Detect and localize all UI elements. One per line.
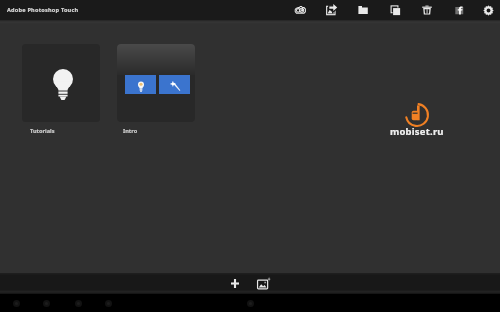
button[interactable]: Delete: [413, 0, 441, 20]
button[interactable]: Settings: [474, 0, 500, 20]
button[interactable]: Intro: [117, 44, 195, 135]
staticText: Adobe Photoshop Touch: [7, 6, 79, 14]
button[interactable]: Folder: [349, 0, 377, 20]
staticText: Tutorials: [30, 127, 55, 135]
button[interactable]: Tutorials: [22, 44, 100, 135]
button[interactable]: Export image: [317, 0, 345, 20]
button[interactable]: New image: [250, 273, 278, 294]
button[interactable]: Recent apps: [71, 297, 85, 310]
button[interactable]: Home: [39, 297, 53, 310]
staticText: mobiset.ru: [390, 125, 444, 138]
button[interactable]: Duplicate: [381, 0, 409, 20]
staticText: Intro: [123, 127, 138, 135]
button[interactable]: Back: [9, 297, 23, 310]
button[interactable]: Notifications: [243, 297, 257, 310]
button[interactable]: Add: [221, 273, 249, 294]
button[interactable]: Facebook: [445, 0, 473, 20]
button[interactable]: Projects: [286, 0, 314, 20]
button[interactable]: Menu: [101, 297, 115, 310]
